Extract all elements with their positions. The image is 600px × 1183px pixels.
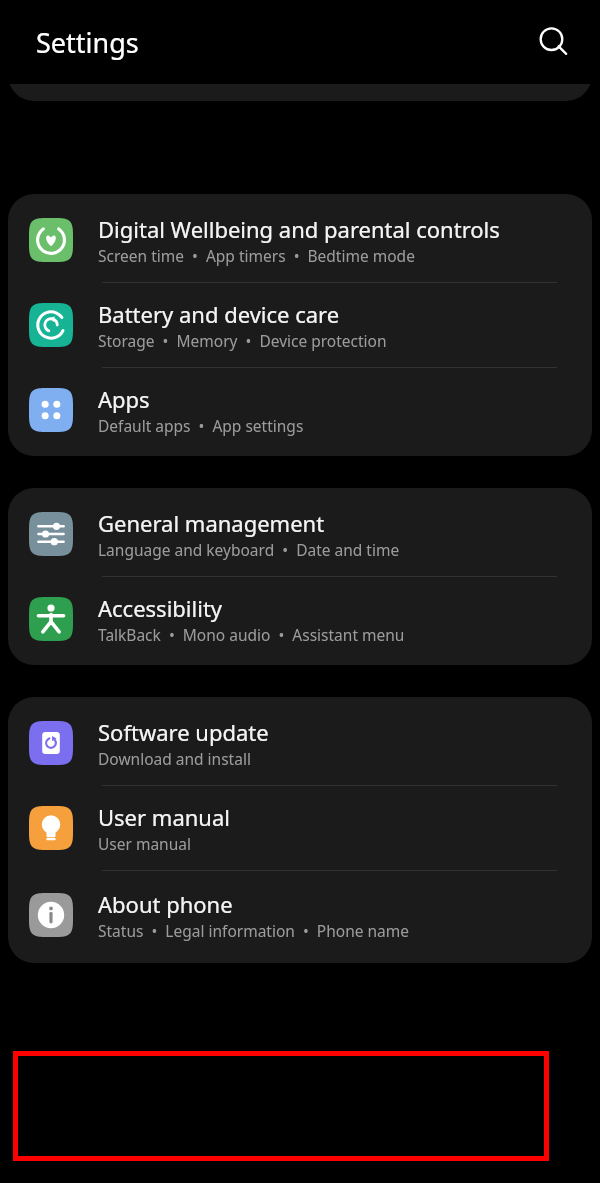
button[interactable]: Accessibility xyxy=(8,577,592,665)
staticText: TalkBack • Mono audio • Assistant menu xyxy=(98,624,405,645)
button[interactable]: Battery and device care xyxy=(8,283,592,367)
button[interactable]: User manual xyxy=(8,786,592,870)
staticText: General management xyxy=(98,508,325,538)
other: User manual xyxy=(29,806,73,850)
staticText: Settings xyxy=(36,24,139,61)
staticText: Status • Legal information • Phone name xyxy=(98,920,410,941)
button[interactable]: Advanced features xyxy=(8,84,592,101)
other: General management xyxy=(29,512,73,556)
staticText: Accessibility xyxy=(98,593,223,623)
button[interactable]: Apps xyxy=(8,368,592,456)
other: Battery and device care xyxy=(29,303,73,347)
button[interactable]: About phone xyxy=(8,871,592,963)
staticText: Language and keyboard • Date and time xyxy=(98,539,400,560)
button[interactable]: Search xyxy=(530,19,576,65)
button[interactable]: Advanced features xyxy=(8,84,592,101)
button[interactable]: Software update xyxy=(8,697,592,785)
button[interactable]: General management xyxy=(8,488,592,576)
other: Apps xyxy=(29,388,73,432)
staticText: Screen time • App timers • Bedtime mode xyxy=(98,245,415,266)
staticText: Download and install xyxy=(98,748,251,769)
other: Digital Wellbeing and parental controls xyxy=(29,218,73,262)
staticText: Default apps • App settings xyxy=(98,415,304,436)
staticText: Digital Wellbeing and parental controls xyxy=(98,214,500,244)
staticText: User manual xyxy=(98,802,230,832)
other: About phone xyxy=(29,893,73,937)
staticText: Battery and device care xyxy=(98,299,340,329)
staticText: Storage • Memory • Device protection xyxy=(98,330,387,351)
staticText: Apps xyxy=(98,384,150,414)
staticText: Software update xyxy=(98,717,269,747)
staticText: User manual xyxy=(98,833,191,854)
other: Accessibility xyxy=(29,597,73,641)
staticText: About phone xyxy=(98,889,233,919)
other: Software update xyxy=(29,721,73,765)
button[interactable]: Digital Wellbeing and parental controls xyxy=(8,194,592,282)
